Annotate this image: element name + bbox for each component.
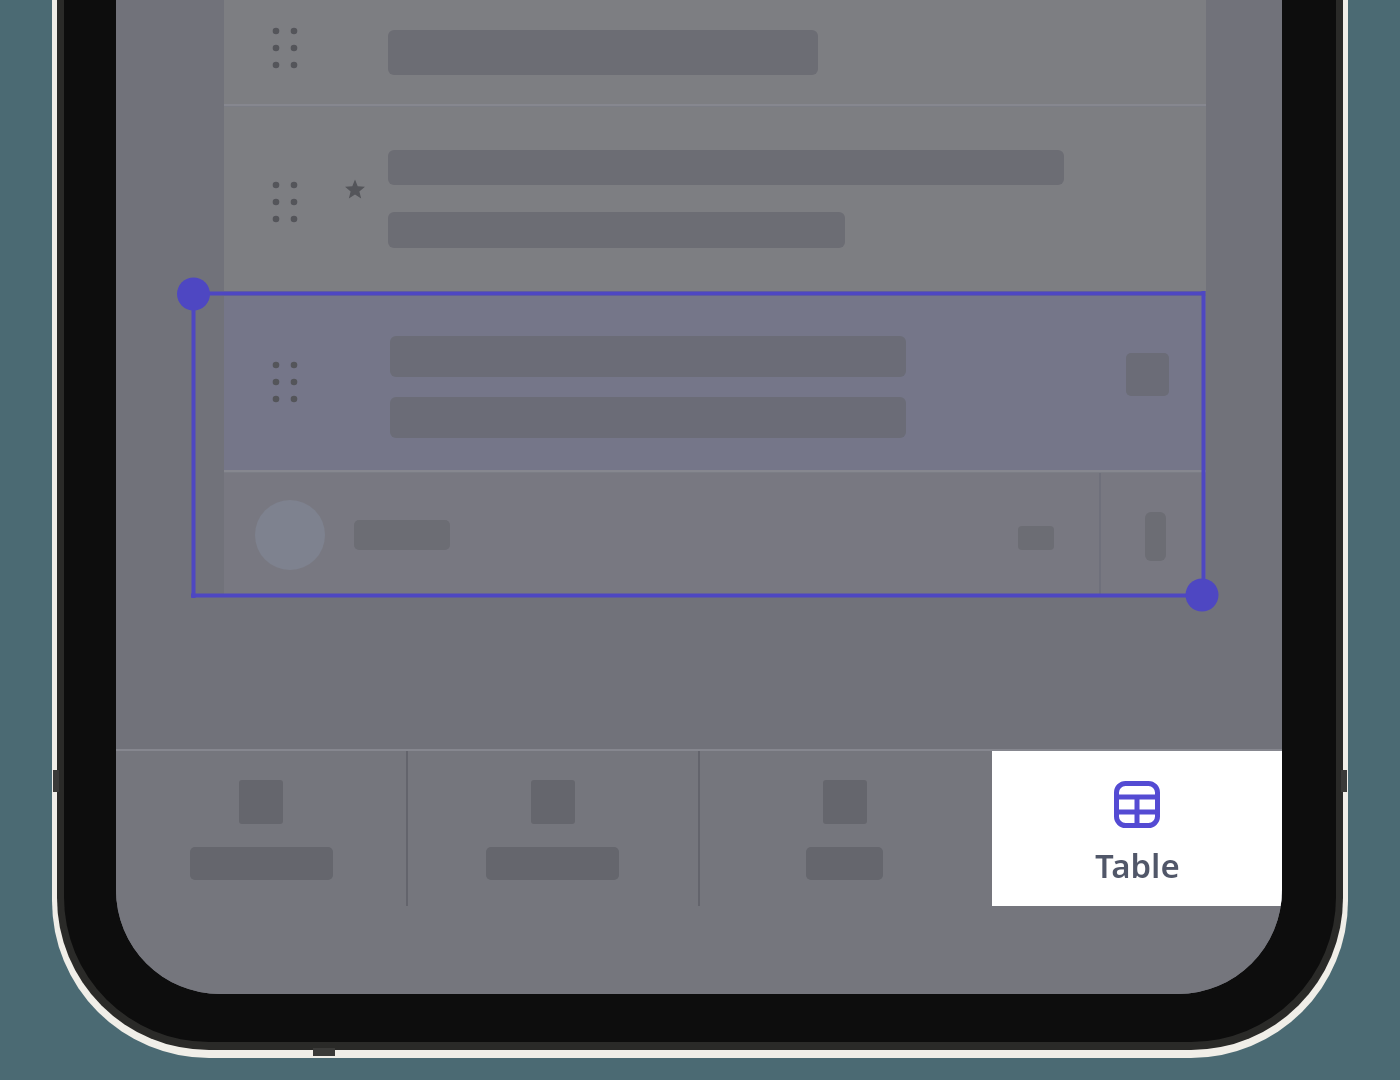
- button[interactable]: [224, 296, 1206, 470]
- staticText: Table: [1095, 843, 1180, 885]
- button[interactable]: [116, 751, 406, 906]
- button[interactable]: [224, 107, 1206, 291]
- button[interactable]: [408, 751, 698, 906]
- button[interactable]: [224, 473, 1206, 593]
- button[interactable]: [700, 751, 990, 906]
- button[interactable]: [992, 751, 1282, 906]
- button[interactable]: [224, 0, 1206, 104]
